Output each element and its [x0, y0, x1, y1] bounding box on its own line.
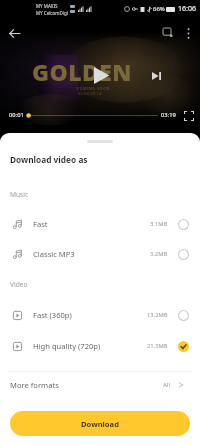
staticText: Download video as — [10, 154, 88, 165]
staticText: MY MAXIS — [36, 3, 58, 9]
staticText: All — [163, 381, 170, 389]
staticText: Video — [10, 280, 28, 289]
staticText: GOLDEN — [32, 56, 132, 87]
staticText: Download — [81, 419, 119, 429]
button[interactable]: Fast — [0, 211, 200, 237]
button[interactable]: Next — [149, 68, 164, 83]
staticText: 13.2MB — [147, 311, 168, 319]
staticText: 00:01 — [9, 111, 24, 119]
staticText: MY CelcomDigi — [36, 10, 68, 16]
staticText: 21.3MB — [147, 342, 168, 350]
button[interactable]: More formats — [0, 372, 200, 398]
button[interactable]: Cast to device — [159, 24, 177, 42]
button[interactable]: Back — [4, 23, 24, 43]
staticText: 03:19 — [161, 111, 176, 119]
button[interactable]: More options — [180, 25, 196, 41]
staticText: More formats — [10, 380, 59, 390]
staticText: Music — [10, 190, 29, 199]
staticText: 3.1MB — [150, 220, 168, 228]
button[interactable]: Download — [10, 411, 190, 436]
button[interactable]: Fullscreen — [182, 109, 195, 122]
button[interactable]: Fast (360p) — [0, 302, 200, 328]
button[interactable]: Play — [91, 65, 112, 86]
staticText: 66% — [153, 5, 165, 13]
staticText: 00.00.00.14 — [78, 91, 102, 96]
button[interactable]: Classic MP3 — [0, 241, 200, 267]
staticText: High quality (720p) — [33, 341, 101, 351]
staticText: Fast — [33, 219, 48, 229]
button[interactable]: High quality (720p) — [0, 333, 200, 359]
staticText: 3.2MB — [150, 250, 168, 258]
staticText: COMING SOON — [77, 86, 110, 91]
staticText: 16:06 — [178, 4, 196, 14]
staticText: Fast (360p) — [33, 310, 72, 320]
staticText: Classic MP3 — [33, 249, 75, 259]
